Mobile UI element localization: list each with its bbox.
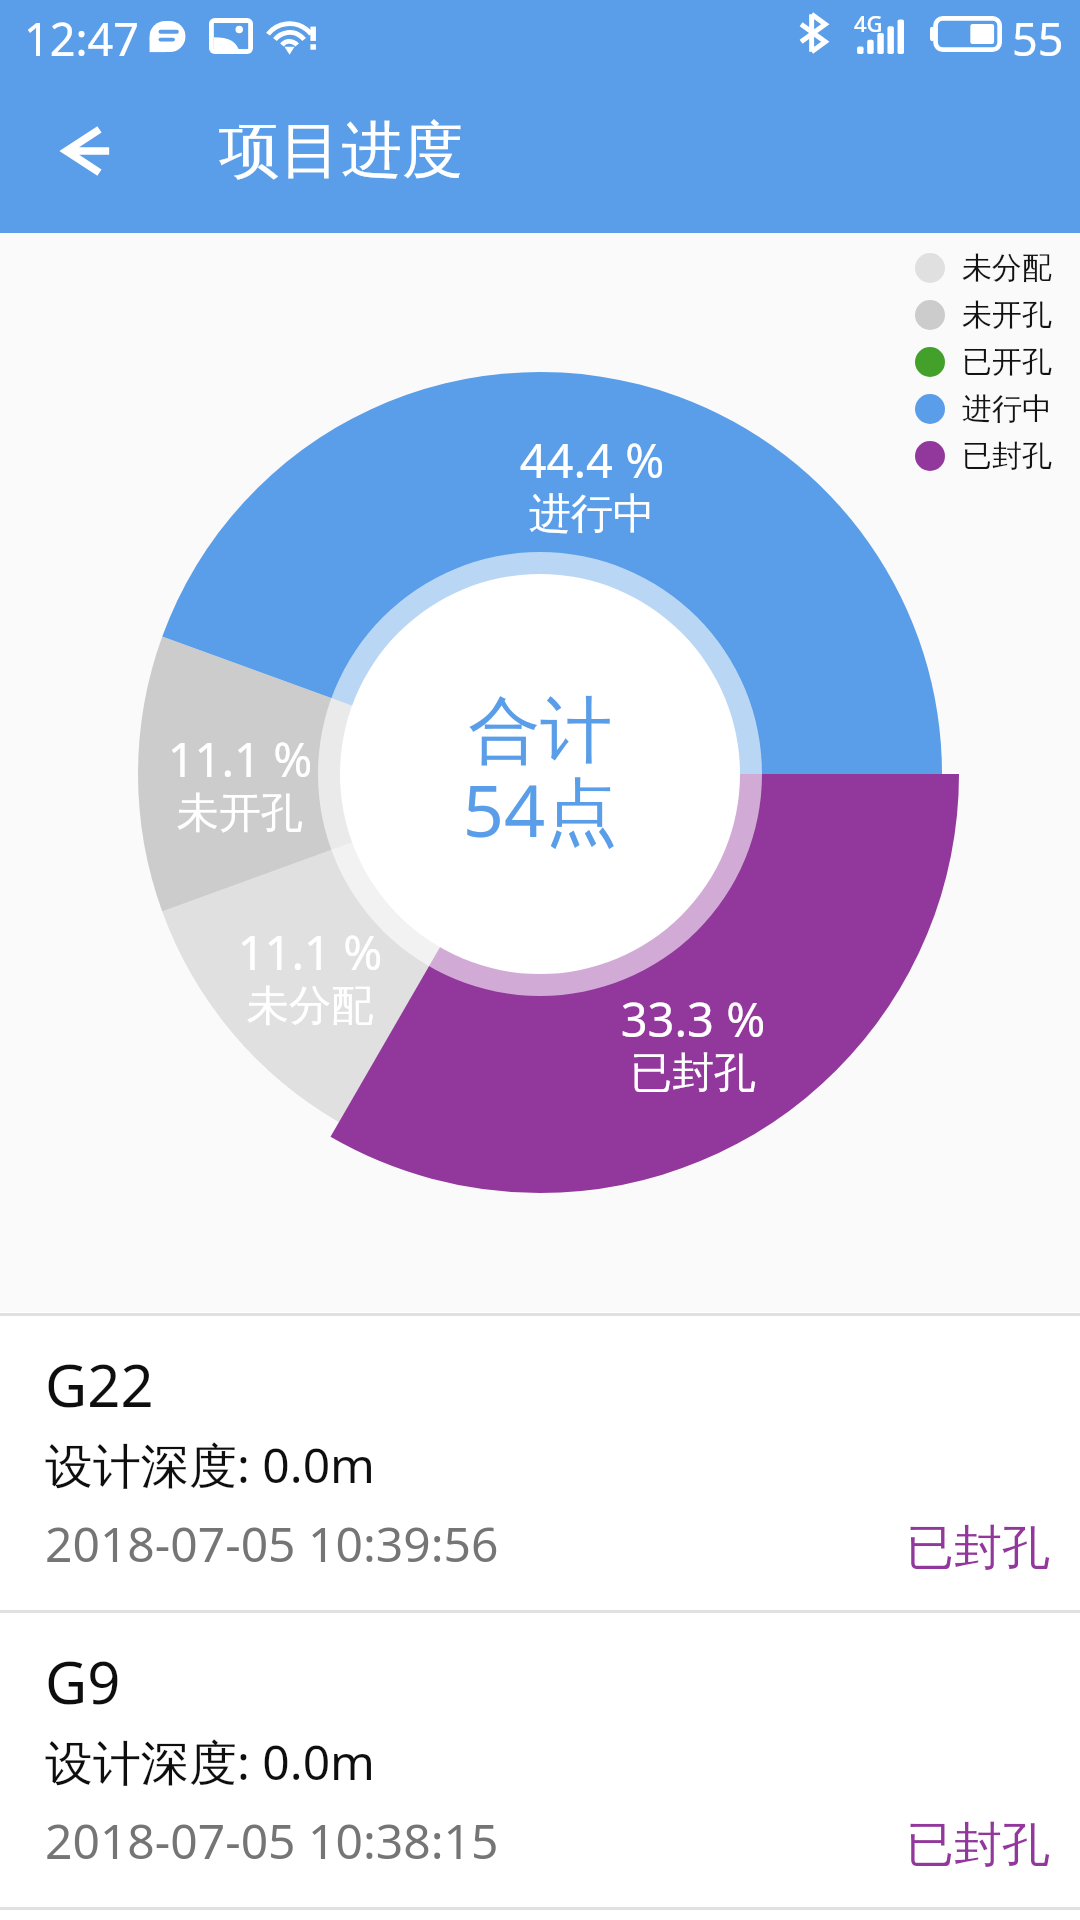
staticText: G22 <box>45 1345 154 1424</box>
staticText: 已封孔 <box>962 437 1052 475</box>
staticText: 已封孔 <box>906 1815 1050 1875</box>
staticText: 2018-07-05 10:39:56 <box>45 1511 499 1576</box>
button[interactable]: Back <box>0 72 166 233</box>
staticText: 已开孔 <box>962 343 1052 381</box>
staticText: 已封孔 <box>543 1047 843 1100</box>
staticText: 11.1 % <box>160 920 460 984</box>
button[interactable]: G22 <box>0 1316 1080 1610</box>
staticText: 44.4 % <box>442 428 742 492</box>
staticText: 未分配 <box>962 249 1052 287</box>
staticText: 未开孔 <box>962 296 1052 334</box>
staticText: 55 <box>1012 8 1064 69</box>
staticText: 2018-07-05 10:38:15 <box>45 1808 499 1873</box>
staticText: 项目进度 <box>219 112 463 189</box>
staticText: 未分配 <box>160 980 460 1033</box>
staticText: 设计深度: 0.0m <box>45 1432 376 1498</box>
staticText: 12:47 <box>24 8 140 69</box>
staticText: 已封孔 <box>906 1518 1050 1578</box>
staticText: 合计 54点 <box>380 686 700 858</box>
staticText: 进行中 <box>962 390 1052 428</box>
button[interactable]: Project progress chart <box>121 355 959 1193</box>
button[interactable]: G9 <box>0 1613 1080 1907</box>
staticText: 设计深度: 0.0m <box>45 1729 376 1795</box>
staticText: G9 <box>45 1642 121 1721</box>
staticText: 未开孔 <box>90 787 390 840</box>
staticText: 33.3 % <box>543 987 843 1051</box>
staticText: 进行中 <box>442 488 742 541</box>
staticText: 11.1 % <box>90 727 390 791</box>
staticText: 4G <box>854 8 883 38</box>
